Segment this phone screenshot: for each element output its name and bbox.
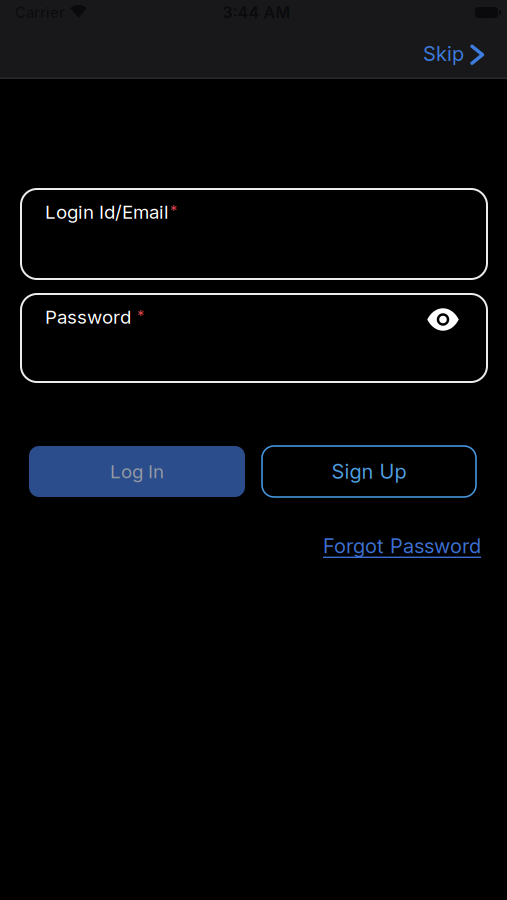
staticText: Password [45,306,131,328]
button[interactable]: Show password [427,308,459,330]
staticText: Log In [110,460,164,482]
button[interactable]: Forgot Password [323,534,481,558]
staticText: * [137,307,144,324]
staticText: Skip [423,42,464,66]
button[interactable]: Sign Up [262,446,476,497]
staticText: 3:44 AM [222,3,290,22]
button[interactable]: Log In [29,446,245,497]
staticText: Forgot Password [323,534,481,558]
staticText: Sign Up [331,460,406,483]
staticText: Carrier [15,4,65,21]
staticText: Login Id/Email [45,201,169,223]
button[interactable]: Skip [423,39,507,63]
staticText: * [170,202,177,219]
